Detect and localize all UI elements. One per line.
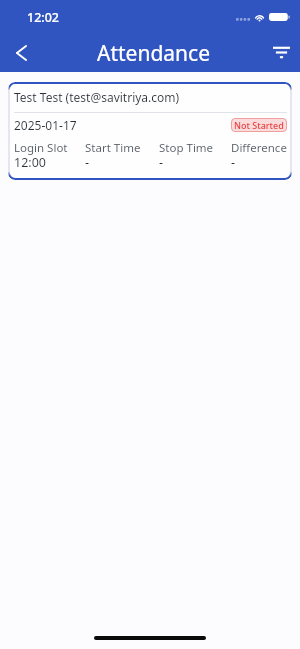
staticText: Attendance bbox=[97, 39, 211, 68]
staticText: Test Test (test@savitriya.com) bbox=[14, 89, 180, 105]
staticText: 2025-01-17 bbox=[14, 117, 77, 133]
button[interactable]: Back bbox=[0, 30, 42, 72]
staticText: Not Started bbox=[234, 119, 284, 131]
staticText: 12:02 bbox=[27, 9, 60, 26]
staticText: Login Slot bbox=[14, 140, 68, 156]
staticText: Start Time bbox=[85, 140, 141, 156]
staticText: 12:00 bbox=[14, 154, 46, 171]
staticText: Difference bbox=[231, 140, 287, 156]
button[interactable]: Test Test (test@savitriya.com) bbox=[8, 82, 292, 180]
staticText: - bbox=[231, 154, 236, 171]
staticText: Stop Time bbox=[159, 140, 214, 156]
button[interactable]: Filter bbox=[263, 30, 300, 72]
staticText: - bbox=[159, 154, 164, 171]
staticText: - bbox=[85, 154, 90, 171]
